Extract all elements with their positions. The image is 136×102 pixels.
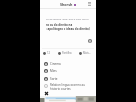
staticText: Mais...: [83, 51, 91, 55]
staticText: Shorsh: [60, 2, 73, 7]
staticText: Cinema: [50, 62, 61, 66]
button[interactable]: Partilha: [58, 50, 72, 56]
staticText: 12: [47, 51, 50, 55]
button[interactable]: 12: [43, 50, 50, 56]
staticText: Tu de idioma "que" escrit usos visi oi: [46, 17, 89, 20]
staticText: Relation lingua ocorrno au historio cour…: [50, 83, 85, 90]
button[interactable]: Menu: [88, 2, 91, 4]
button[interactable]: Mies: [44, 67, 93, 75]
staticText: Mies: [50, 69, 57, 73]
button[interactable]: Close: [44, 91, 49, 96]
staticText: Sorte: [50, 77, 58, 81]
staticText: Partilha: [62, 51, 72, 55]
button[interactable]: Sorte: [44, 75, 93, 83]
button[interactable]: Mais...: [79, 50, 91, 56]
button[interactable]: Relation lingua ocorrno au historio cour…: [44, 82, 93, 90]
button[interactable]: Cinema: [44, 60, 93, 68]
staticText: ra cu do direito na : apolitogeo c ideau…: [46, 23, 90, 31]
